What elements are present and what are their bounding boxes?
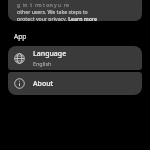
button[interactable]: g in t rm t on y u re (8, 0, 142, 21)
staticText: Language (33, 49, 67, 59)
button[interactable]: About (8, 72, 142, 95)
staticText: protect your privacy. Learn more (17, 15, 97, 21)
staticText: English (33, 60, 52, 67)
staticText: App (14, 32, 27, 41)
staticText: About (33, 79, 54, 89)
button[interactable]: Language, English (8, 46, 142, 70)
staticText: g in t rm t on y u re (17, 1, 69, 8)
staticText: other users. We take steps to (17, 8, 88, 15)
